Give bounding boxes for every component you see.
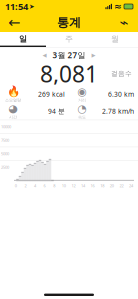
staticText: ◔: [77, 103, 86, 115]
staticText: 3월 27일: [52, 50, 85, 60]
staticText: ◀: [42, 52, 46, 58]
staticText: ≈: [114, 1, 122, 12]
staticText: 4: [34, 183, 36, 188]
staticText: 16: [91, 183, 95, 188]
staticText: 일: [19, 34, 27, 44]
button[interactable]: Share: [113, 13, 135, 32]
staticText: 시간: [9, 115, 17, 120]
staticText: 10: [62, 183, 66, 188]
staticText: 🔥: [6, 85, 19, 98]
button[interactable]: Back: [3, 13, 25, 32]
staticText: ➤: [29, 3, 35, 10]
staticText: ▶: [91, 52, 95, 58]
staticText: 2500: [1, 164, 9, 170]
staticText: 8,081: [40, 58, 98, 89]
staticText: ←: [8, 14, 20, 31]
staticText: 20: [110, 183, 114, 188]
button[interactable]: 월: [92, 32, 138, 47]
staticText: ⌁: [119, 14, 128, 31]
staticText: 12: [71, 183, 75, 188]
staticText: ◉: [77, 86, 86, 98]
staticText: 8: [53, 183, 55, 188]
staticText: 걸음수: [111, 69, 132, 78]
staticText: 94 분: [48, 107, 65, 116]
staticText: 속도: [78, 115, 86, 120]
staticText: 18: [100, 183, 104, 188]
staticText: 5000: [1, 151, 9, 156]
staticText: ◕: [8, 103, 17, 115]
staticText: 24: [129, 183, 133, 188]
staticText: 거리: [78, 98, 86, 103]
staticText: 통계: [57, 15, 81, 30]
staticText: 14: [81, 183, 85, 188]
button[interactable]: 주: [46, 32, 92, 47]
staticText: 22: [119, 183, 123, 188]
staticText: 6.30 km: [108, 90, 134, 99]
staticText: 6: [44, 183, 46, 188]
staticText: 7500: [1, 137, 9, 143]
staticText: 주: [65, 34, 73, 44]
staticText: 월: [111, 34, 119, 44]
staticText: 2.78 km/h: [102, 107, 134, 116]
button[interactable]: Previous day: [38, 49, 50, 61]
staticText: 269 kcal: [38, 90, 65, 99]
button[interactable]: Next day: [87, 49, 99, 61]
staticText: 소모열량: [5, 98, 21, 103]
button[interactable]: 일: [0, 32, 46, 47]
staticText: 10000: [1, 124, 11, 129]
staticText: 11:54: [5, 0, 28, 13]
staticText: 2: [24, 183, 26, 188]
staticText: 0: [15, 183, 17, 188]
